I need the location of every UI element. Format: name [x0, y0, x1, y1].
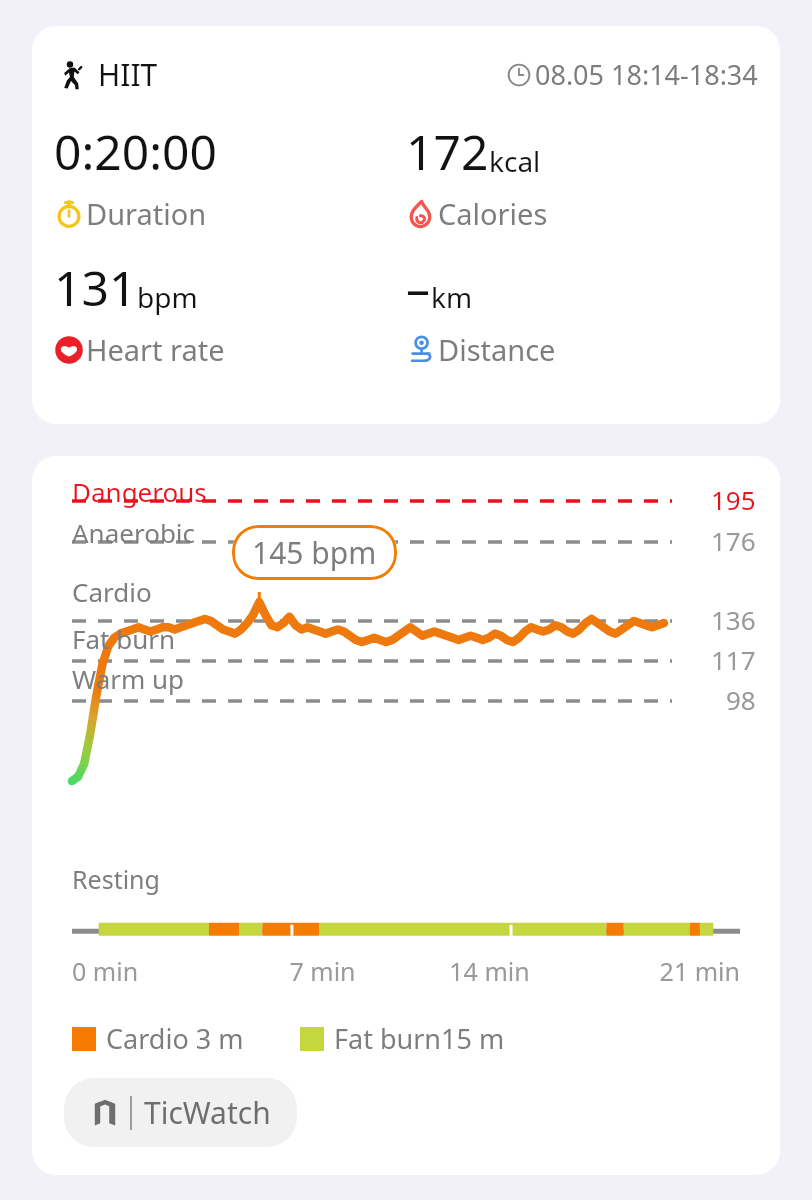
staticText: Fat burn	[72, 621, 176, 656]
button[interactable]: TicWatch	[64, 1078, 297, 1147]
button[interactable]: 172	[406, 119, 758, 233]
staticText: Fat burn15 m	[334, 1020, 505, 1057]
staticText: 0 min	[72, 954, 239, 988]
staticText: 98	[726, 682, 756, 717]
staticText: 7 min	[239, 954, 406, 988]
button[interactable]: 0:20:00	[54, 119, 406, 233]
button[interactable]: HIIT	[32, 26, 780, 424]
staticText: Dangerous	[72, 474, 207, 509]
staticText: 131	[54, 255, 137, 320]
staticText: 117	[711, 642, 756, 677]
staticText: Resting	[72, 862, 160, 896]
staticText: 176	[711, 523, 756, 558]
staticText: 08.05 18:14-18:34	[535, 56, 758, 93]
staticText: 136	[711, 602, 756, 637]
staticText: –	[406, 255, 431, 320]
staticText: Calories	[438, 194, 548, 233]
staticText: 0:20:00	[54, 119, 218, 184]
staticText: 21 min	[573, 954, 740, 988]
button[interactable]: Dangerous	[32, 456, 780, 1175]
staticText: Cardio	[72, 574, 152, 609]
staticText: 172	[406, 119, 489, 184]
staticText: kcal	[489, 142, 541, 180]
staticText: Heart rate	[86, 330, 225, 369]
staticText: Duration	[86, 194, 207, 233]
staticText: HIIT	[98, 54, 158, 95]
staticText: Warm up	[72, 661, 185, 696]
staticText: 145 bpm	[252, 532, 377, 573]
button[interactable]: –	[406, 255, 758, 369]
button[interactable]: 145 bpm	[232, 525, 397, 580]
staticText: Anaerobic	[72, 515, 196, 550]
staticText: 14 min	[406, 954, 573, 988]
button[interactable]: 131	[54, 255, 406, 369]
staticText: 195	[711, 482, 756, 517]
staticText: TicWatch	[144, 1092, 271, 1133]
staticText: bpm	[137, 278, 198, 316]
staticText: Cardio 3 m	[106, 1020, 244, 1057]
staticText: km	[431, 278, 473, 316]
staticText: Distance	[438, 330, 556, 369]
